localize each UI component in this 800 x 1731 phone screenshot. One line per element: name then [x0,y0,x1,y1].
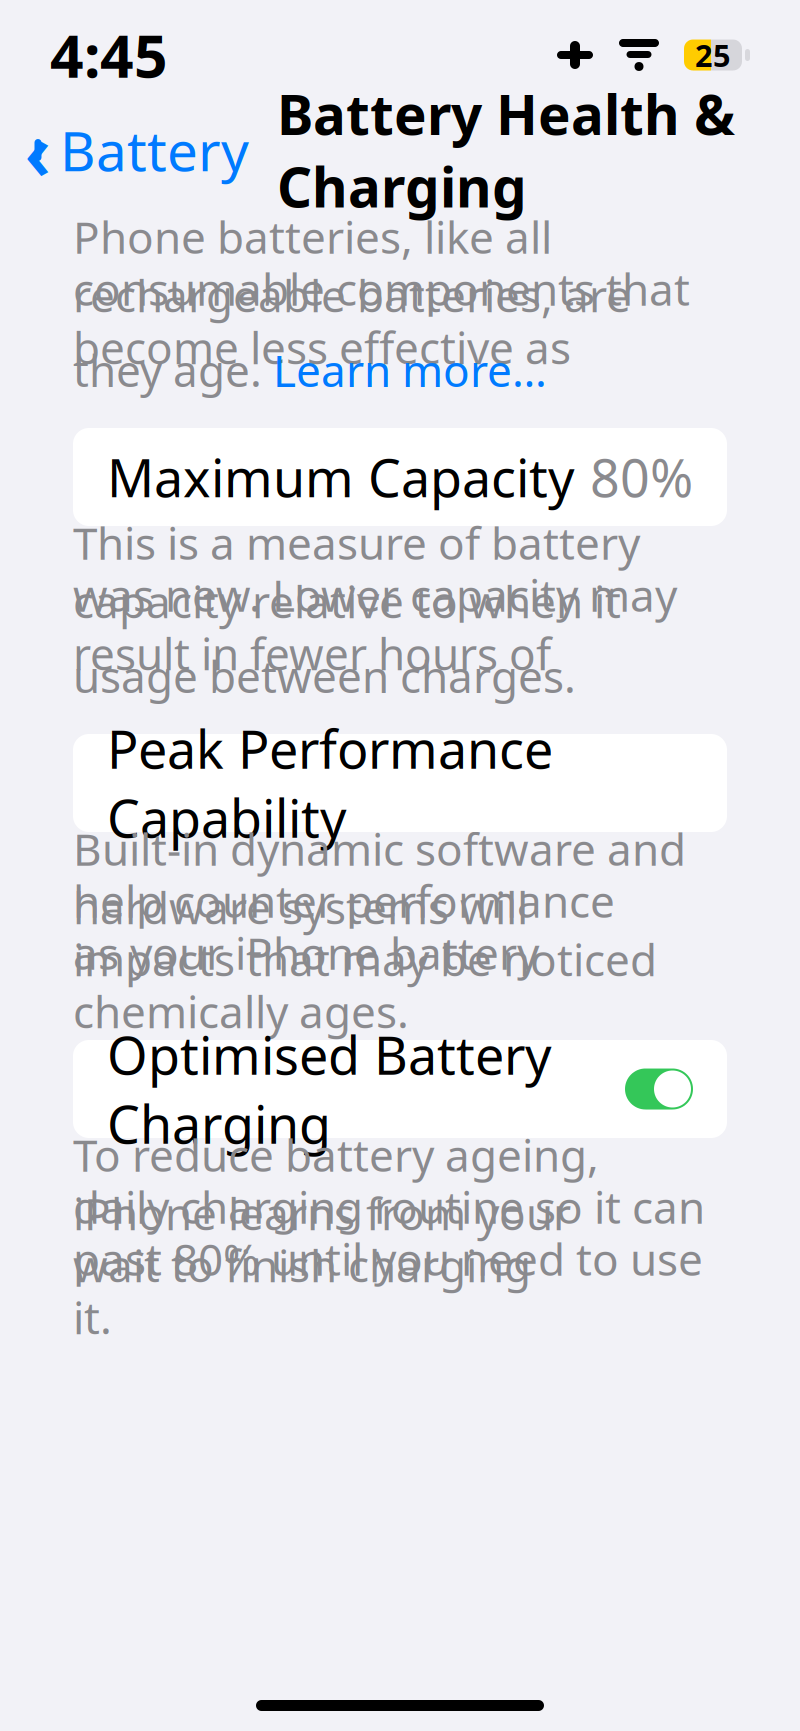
staticText: Battery [60,114,249,186]
button[interactable]: Maximum Capacity [73,428,727,526]
staticText: help counter performance impacts that ma… [73,872,657,988]
staticText: Phone batteries, like all rechargeable b… [73,208,631,324]
staticText: usage between charges. [73,647,576,705]
staticText: Built-in dynamic software and hardware s… [73,820,686,936]
button[interactable]: Peak Performance Capability [73,734,727,832]
staticText: This is a measure of battery capacity re… [73,514,640,630]
staticText: Optimised Battery Charging [107,1020,552,1158]
staticText: consumable components that become less e… [73,260,690,376]
staticText: daily charging routine so it can wait to… [73,1178,705,1294]
staticText: 80% [590,442,693,512]
staticText: was new. Lower capacity may result in fe… [73,566,677,682]
staticText: Peak Performance Capability [107,714,553,852]
staticText: 4:45 [50,16,168,94]
staticText: ‹ [24,99,51,201]
button[interactable]: Optimised Battery Charging [73,1040,727,1138]
staticText: past 80% until you need to use it. [73,1230,703,1346]
staticText: 25 [695,35,731,75]
staticText: Learn more… [273,341,547,399]
staticText: Battery Health & Charging [277,77,735,223]
staticText: as your iPhone battery chemically ages. [73,924,539,1040]
staticText: they age. [73,341,273,399]
staticText: To reduce battery ageing, iPhone learns … [73,1126,599,1242]
staticText: Maximum Capacity [107,442,575,512]
button[interactable]: ‹ [26,102,249,198]
button[interactable]: Learn more… [273,341,547,399]
